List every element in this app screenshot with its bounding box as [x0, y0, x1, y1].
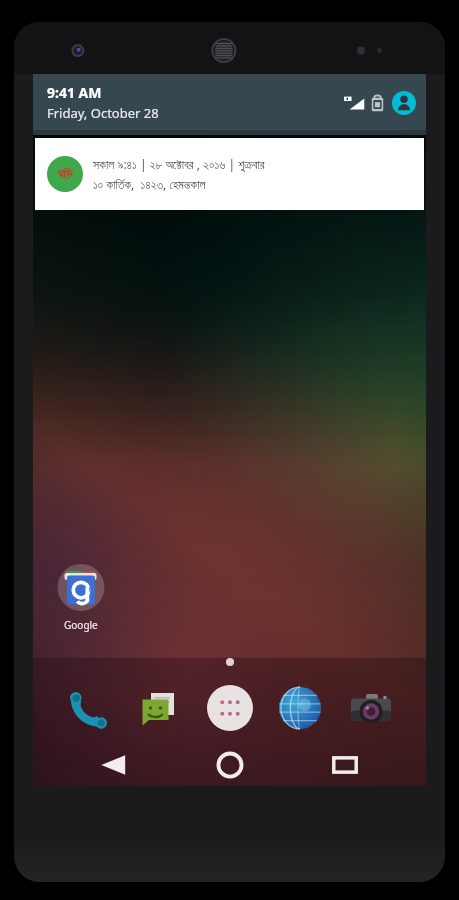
- button[interactable]: Camera: [346, 683, 396, 733]
- staticText: Friday, October 28: [47, 104, 159, 122]
- button[interactable]: Browser: [275, 683, 325, 733]
- staticText: সকাল ৯:৪১ | ২৮ অক্টোবর , ২০১৬ | শুক্রবার: [93, 156, 265, 172]
- button[interactable]: Recents: [310, 744, 380, 786]
- staticText: ঘড়ি: [57, 168, 73, 181]
- button[interactable]: Messaging: [134, 683, 184, 733]
- other: Battery: [371, 95, 384, 112]
- button[interactable]: ঘড়ি: [35, 138, 424, 210]
- button[interactable]: Google: [49, 564, 113, 632]
- staticText: ১০ কার্তিক, ১৪২৩, হেমন্তকাল: [93, 176, 206, 192]
- staticText: 9:41 AM: [47, 83, 102, 102]
- button[interactable]: Home: [195, 744, 265, 786]
- button[interactable]: Phone: [64, 683, 114, 733]
- button[interactable]: User profile: [392, 91, 416, 115]
- other: Mobile signal 4G: [343, 93, 365, 113]
- button[interactable]: Back: [79, 744, 149, 786]
- button[interactable]: Apps: [205, 683, 255, 733]
- staticText: Google: [64, 618, 98, 632]
